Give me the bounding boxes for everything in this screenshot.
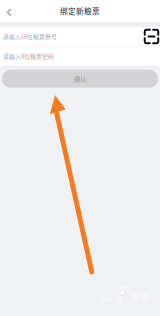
staticText: 请输入8位粮票密码 [3, 52, 54, 60]
button[interactable]: 确认 [2, 70, 158, 88]
staticText: 绑定新粮票 [60, 5, 100, 16]
button[interactable]: Back [0, 0, 16, 22]
staticText: 请输入16位粮票券号 [3, 32, 57, 41]
staticText: 确认 [74, 74, 86, 83]
button[interactable]: Scan code [143, 27, 160, 46]
